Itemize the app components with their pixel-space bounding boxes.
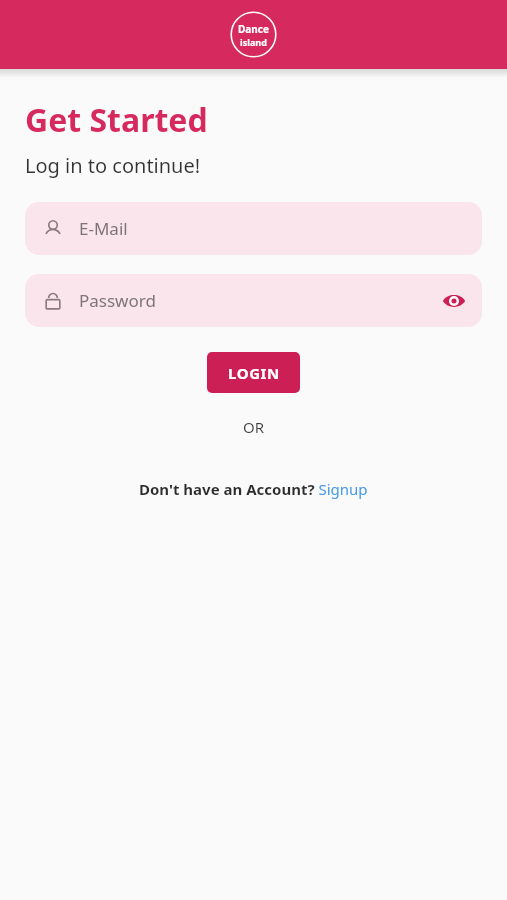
staticText: LOGIN [228,363,280,383]
staticText: island [240,36,267,48]
staticText: Log in to continue! [25,152,201,179]
staticText: Dance [238,22,269,36]
button[interactable]: E-Mail [25,202,482,255]
staticText: Don't have an Account? Signup [139,479,368,499]
button[interactable]: Don't have an Account? Signup [0,479,507,499]
staticText: Get Started [25,98,208,142]
button[interactable]: Password [25,274,482,327]
staticText: E-Mail [79,217,128,240]
staticText: Password [79,289,156,312]
button[interactable]: Toggle password visibility [432,279,476,323]
button[interactable]: LOGIN [207,352,300,393]
other: Dance Island logo [230,11,277,58]
staticText: OR [243,417,265,437]
